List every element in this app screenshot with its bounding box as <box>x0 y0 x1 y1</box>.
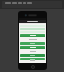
button[interactable]: Action <box>20 42 45 45</box>
button[interactable]: Submit <box>20 46 45 49</box>
button[interactable] <box>12 2 17 4</box>
button[interactable] <box>27 2 32 4</box>
button[interactable] <box>23 2 26 4</box>
button[interactable]: Action <box>20 58 45 60</box>
button[interactable]: Action <box>20 54 45 57</box>
button[interactable] <box>5 2 11 4</box>
button[interactable]: Submit <box>20 34 45 37</box>
button[interactable] <box>18 2 22 4</box>
